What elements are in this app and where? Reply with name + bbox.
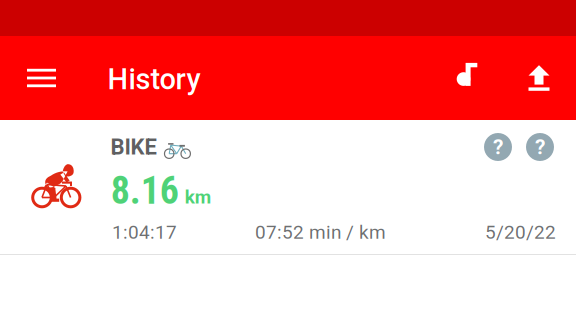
staticText: km [185,186,211,208]
staticText: History [107,62,200,96]
staticText: 5/20/22 [485,221,556,243]
staticText: 1:04:17 [112,221,177,243]
staticText: 07:52 min / km [255,221,386,243]
staticText: 8.16 [111,168,179,213]
button[interactable]: Music [439,44,495,104]
button[interactable]: BIKE [0,120,576,254]
staticText: ? [493,135,503,159]
staticText: ? [535,135,545,159]
staticText: BIKE [110,134,156,160]
button[interactable]: Share [511,48,567,108]
button[interactable]: Menu [13,48,69,108]
